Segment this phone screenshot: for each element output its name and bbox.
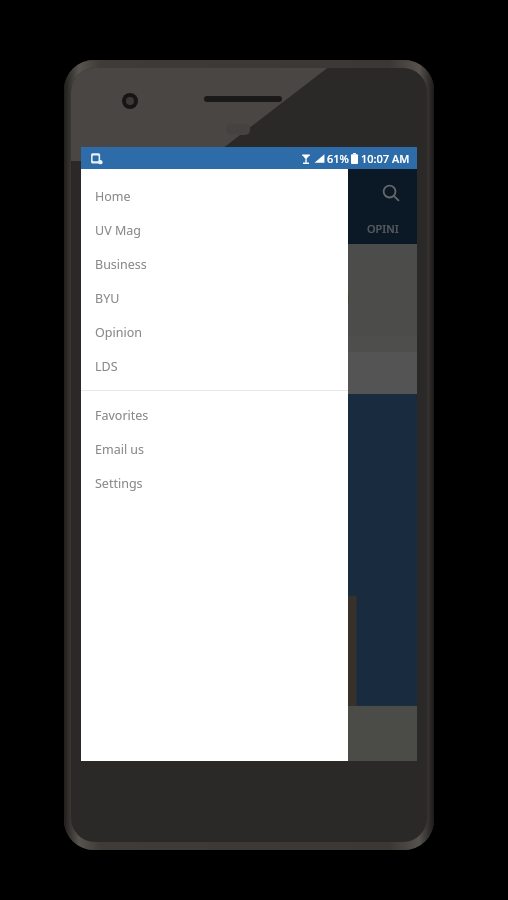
- staticText: Email us: [95, 441, 145, 458]
- button[interactable]: LDS: [81, 349, 348, 383]
- button[interactable]: Search: [373, 175, 409, 211]
- staticText: Opinion: [95, 324, 142, 341]
- button[interactable]: OPINI: [367, 221, 399, 236]
- staticText: 10:07 AM: [361, 151, 410, 166]
- button[interactable]: Email us: [81, 432, 348, 466]
- staticText: BYU: [95, 290, 120, 307]
- staticText: OPINI: [367, 221, 399, 236]
- button[interactable]: Settings: [81, 466, 348, 500]
- button[interactable]: Favorites: [81, 398, 348, 432]
- button[interactable]: YU: [323, 221, 349, 236]
- staticText: LDS: [95, 358, 118, 375]
- staticText: UV Mag: [95, 222, 141, 239]
- staticText: Settings: [95, 475, 143, 492]
- button[interactable]: Home: [81, 179, 348, 213]
- staticText: Favorites: [95, 407, 149, 424]
- staticText: Home: [95, 188, 131, 205]
- button[interactable]: Opinion: [81, 315, 348, 349]
- button[interactable]: Business: [81, 247, 348, 281]
- staticText: 61%: [327, 151, 349, 166]
- button[interactable]: BYU: [81, 281, 348, 315]
- button[interactable]: UV Mag: [81, 213, 348, 247]
- staticText: Business: [95, 256, 147, 273]
